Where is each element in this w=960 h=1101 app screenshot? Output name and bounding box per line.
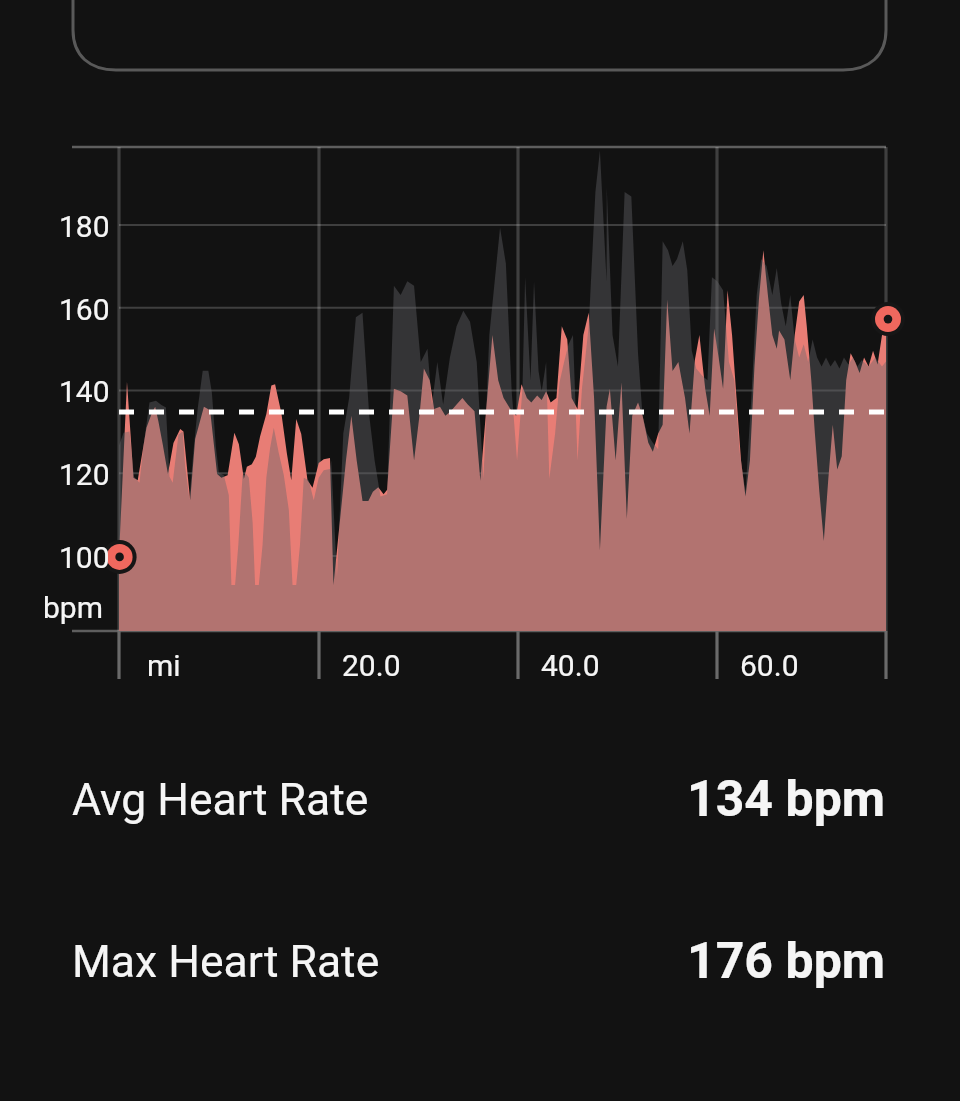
staticText: 140 (59, 374, 110, 409)
staticText: 160 (59, 292, 110, 327)
staticText: mi (147, 648, 181, 683)
staticText: Max Heart Rate (72, 936, 380, 988)
button[interactable]: Max Heart Rate (72, 932, 886, 991)
staticText: bpm (43, 590, 103, 625)
staticText: 60.0 (740, 648, 799, 683)
staticText: 100 (59, 540, 110, 575)
staticText: 180 (59, 209, 110, 244)
button[interactable]: Avg Heart Rate (72, 770, 886, 829)
staticText: Avg Heart Rate (72, 774, 369, 826)
staticText: 134 bpm (687, 770, 886, 829)
staticText: 176 bpm (687, 932, 886, 991)
staticText: 20.0 (342, 648, 401, 683)
staticText: 40.0 (541, 648, 600, 683)
staticText: 120 (59, 457, 110, 492)
